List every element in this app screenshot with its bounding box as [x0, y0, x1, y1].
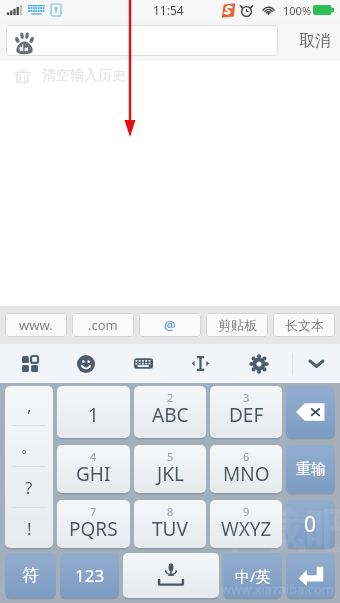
button[interactable] [6, 25, 278, 56]
button[interactable]: ? [5, 467, 53, 507]
staticText: 重输 [296, 460, 326, 479]
staticText: @ [164, 316, 176, 334]
staticText: 1 [88, 402, 99, 428]
button[interactable]: Emoji [61, 344, 111, 383]
button[interactable]: 取消 [299, 20, 331, 61]
staticText: 8 [167, 504, 174, 519]
button[interactable]: www. [5, 313, 67, 337]
button[interactable]: 符 [5, 553, 56, 598]
button[interactable]: , [5, 386, 53, 425]
staticText: 7 [90, 504, 97, 519]
staticText: www. [19, 316, 53, 334]
staticText: 5 [167, 449, 174, 464]
staticText: WXYZ [221, 516, 272, 542]
staticText: 清空输入历史 [42, 67, 126, 85]
staticText: DEF [229, 402, 264, 428]
button[interactable]: 2 [134, 386, 206, 438]
button[interactable]: Settings [234, 344, 284, 383]
button[interactable]: 0 [286, 500, 335, 548]
button[interactable]: Switch keyboard [118, 344, 168, 383]
button[interactable]: 123 [60, 553, 119, 598]
staticText: 6 [243, 449, 250, 464]
staticText: GHI [76, 461, 111, 487]
staticText: 中/英 [235, 566, 271, 586]
button[interactable]: .com [72, 313, 134, 337]
staticText: ? [25, 476, 33, 499]
button[interactable]: Hide keyboard [291, 344, 340, 383]
staticText: 123 [75, 564, 105, 587]
staticText: , [27, 394, 32, 417]
staticText: 0 [304, 510, 317, 539]
button[interactable]: 7 [57, 500, 130, 548]
button[interactable]: 8 [134, 500, 206, 548]
staticText: 。 [21, 436, 38, 457]
button[interactable]: @ [139, 313, 201, 337]
button[interactable]: Backspace [286, 386, 335, 438]
button[interactable]: 长文本 [273, 313, 335, 337]
staticText: ! [27, 517, 32, 540]
staticText: JKL [157, 461, 184, 487]
button[interactable]: Enter [286, 553, 335, 598]
button[interactable]: 重输 [286, 445, 335, 493]
staticText: 100% [283, 3, 312, 18]
button[interactable]: Symbols and apps [5, 344, 55, 383]
staticText: MNO [223, 461, 270, 487]
staticText: 3 [243, 390, 250, 405]
staticText: 11:54 [153, 2, 184, 18]
staticText: TUV [152, 516, 188, 542]
staticText: ABC [152, 402, 189, 428]
staticText: 9 [243, 504, 250, 519]
button[interactable]: 5 [134, 445, 206, 493]
staticText: www.xiazaiba.com [221, 580, 334, 598]
button[interactable]: 6 [210, 445, 282, 493]
button[interactable]: 。 [5, 426, 53, 466]
staticText: 符 [22, 565, 39, 586]
button[interactable]: 3 [210, 386, 282, 438]
staticText: 4 [90, 449, 97, 464]
staticText: 下载吧 [213, 503, 340, 561]
staticText: 长文本 [285, 317, 324, 333]
staticText: 2 [167, 390, 174, 405]
button[interactable]: 剪贴板 [206, 313, 268, 337]
button[interactable]: Move cursor [175, 344, 225, 383]
staticText: .com [88, 316, 118, 334]
staticText: PQRS [69, 516, 118, 542]
button[interactable]: Space [123, 553, 219, 598]
button[interactable]: 1 [57, 386, 130, 438]
button[interactable]: 4 [57, 445, 130, 493]
staticText: 取消 [299, 31, 331, 51]
staticText: 剪贴板 [218, 317, 257, 333]
button[interactable]: 中/英 [223, 553, 282, 598]
button[interactable]: 9 [210, 500, 282, 548]
button[interactable]: 清空输入历史 [14, 61, 340, 91]
button[interactable]: ! [5, 508, 53, 548]
